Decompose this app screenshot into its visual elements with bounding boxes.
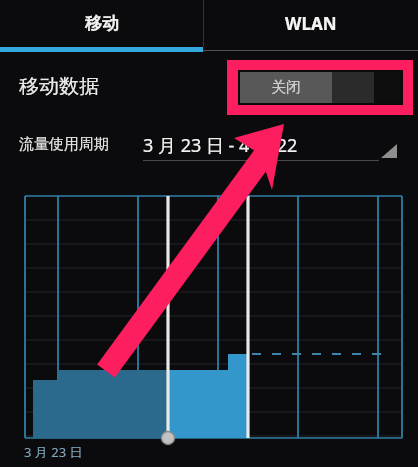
- button[interactable]: 移动: [0, 0, 203, 47]
- staticText: 流量使用周期: [19, 135, 109, 154]
- button[interactable]: 移动数据开关 关闭: [227, 60, 413, 115]
- button[interactable]: 3 月 23 日 - 4 月 22: [143, 124, 403, 168]
- staticText: 3 月 23 日 - 4 月 22: [143, 133, 298, 158]
- button[interactable]: WLAN: [204, 0, 418, 47]
- staticText: 移动: [85, 13, 119, 34]
- staticText: 3 月 23 日: [24, 443, 83, 461]
- staticText: WLAN: [285, 12, 337, 35]
- staticText: 移动数据: [19, 74, 99, 99]
- staticText: 关闭: [271, 78, 301, 97]
